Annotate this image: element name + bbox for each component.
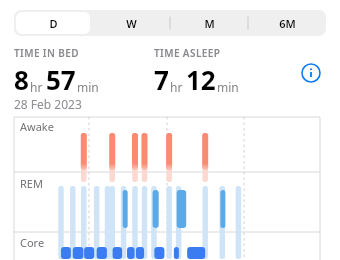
button[interactable]: D (16, 12, 90, 34)
staticText: Core (20, 235, 45, 250)
staticText: 57 (46, 62, 76, 97)
staticText: 6M (279, 16, 296, 31)
staticText: 7 (154, 62, 169, 97)
staticText: hr (30, 79, 43, 95)
staticText: TIME ASLEEP (154, 46, 221, 60)
staticText: D (49, 16, 58, 31)
staticText: TIME IN BED (14, 46, 79, 60)
staticText: Awake (20, 119, 54, 134)
staticText: REM (20, 176, 43, 191)
button[interactable]: 6M (250, 12, 324, 34)
staticText: 28 Feb 2023 (14, 96, 82, 112)
staticText: 12 (186, 62, 216, 97)
staticText: W (126, 16, 137, 31)
staticText: min (217, 79, 239, 95)
staticText: M (204, 16, 215, 31)
staticText: min (77, 79, 99, 95)
button[interactable]: W (94, 12, 168, 34)
button[interactable]: M (172, 12, 246, 34)
button[interactable]: Information about sleep data (298, 60, 324, 86)
staticText: hr (170, 79, 183, 95)
staticText: 8 (14, 62, 29, 97)
